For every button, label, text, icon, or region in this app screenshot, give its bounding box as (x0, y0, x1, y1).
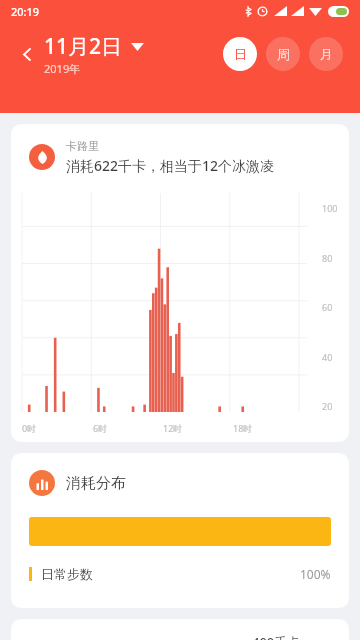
button[interactable]: 400千卡 (11, 619, 349, 640)
staticText: 月 (320, 46, 333, 62)
staticText: 周 (277, 46, 290, 62)
staticText: 11月2日 (44, 32, 123, 61)
staticText: 100% (300, 566, 331, 582)
staticText: 60 (322, 301, 333, 313)
staticText: 消耗分布 (66, 474, 126, 493)
button[interactable]: 卡路里 (11, 124, 349, 442)
staticText: 卡路里 (66, 139, 99, 153)
staticText: 12时 (163, 422, 183, 434)
staticText: 日常步数 (41, 566, 93, 582)
staticText: 20 (322, 400, 333, 412)
button[interactable]: 消耗分布 (11, 453, 349, 608)
button[interactable]: Back (13, 40, 41, 68)
staticText: 400千卡 (252, 633, 301, 640)
staticText: 80 (322, 252, 333, 264)
button[interactable]: 11月2日 (44, 32, 144, 76)
staticText: 20:19 (11, 4, 40, 19)
button[interactable]: 月 (309, 37, 343, 71)
staticText: 40 (322, 351, 333, 363)
staticText: 2019年 (44, 61, 81, 76)
staticText: 消耗622千卡，相当于12个冰激凌 (66, 156, 275, 175)
staticText: 100 (322, 202, 338, 214)
staticText: 6时 (93, 422, 108, 434)
button[interactable]: 日 (223, 37, 257, 71)
button[interactable]: 周 (266, 37, 300, 71)
staticText: 日 (234, 46, 247, 62)
staticText: 0时 (22, 422, 37, 434)
staticText: 18时 (233, 422, 253, 434)
